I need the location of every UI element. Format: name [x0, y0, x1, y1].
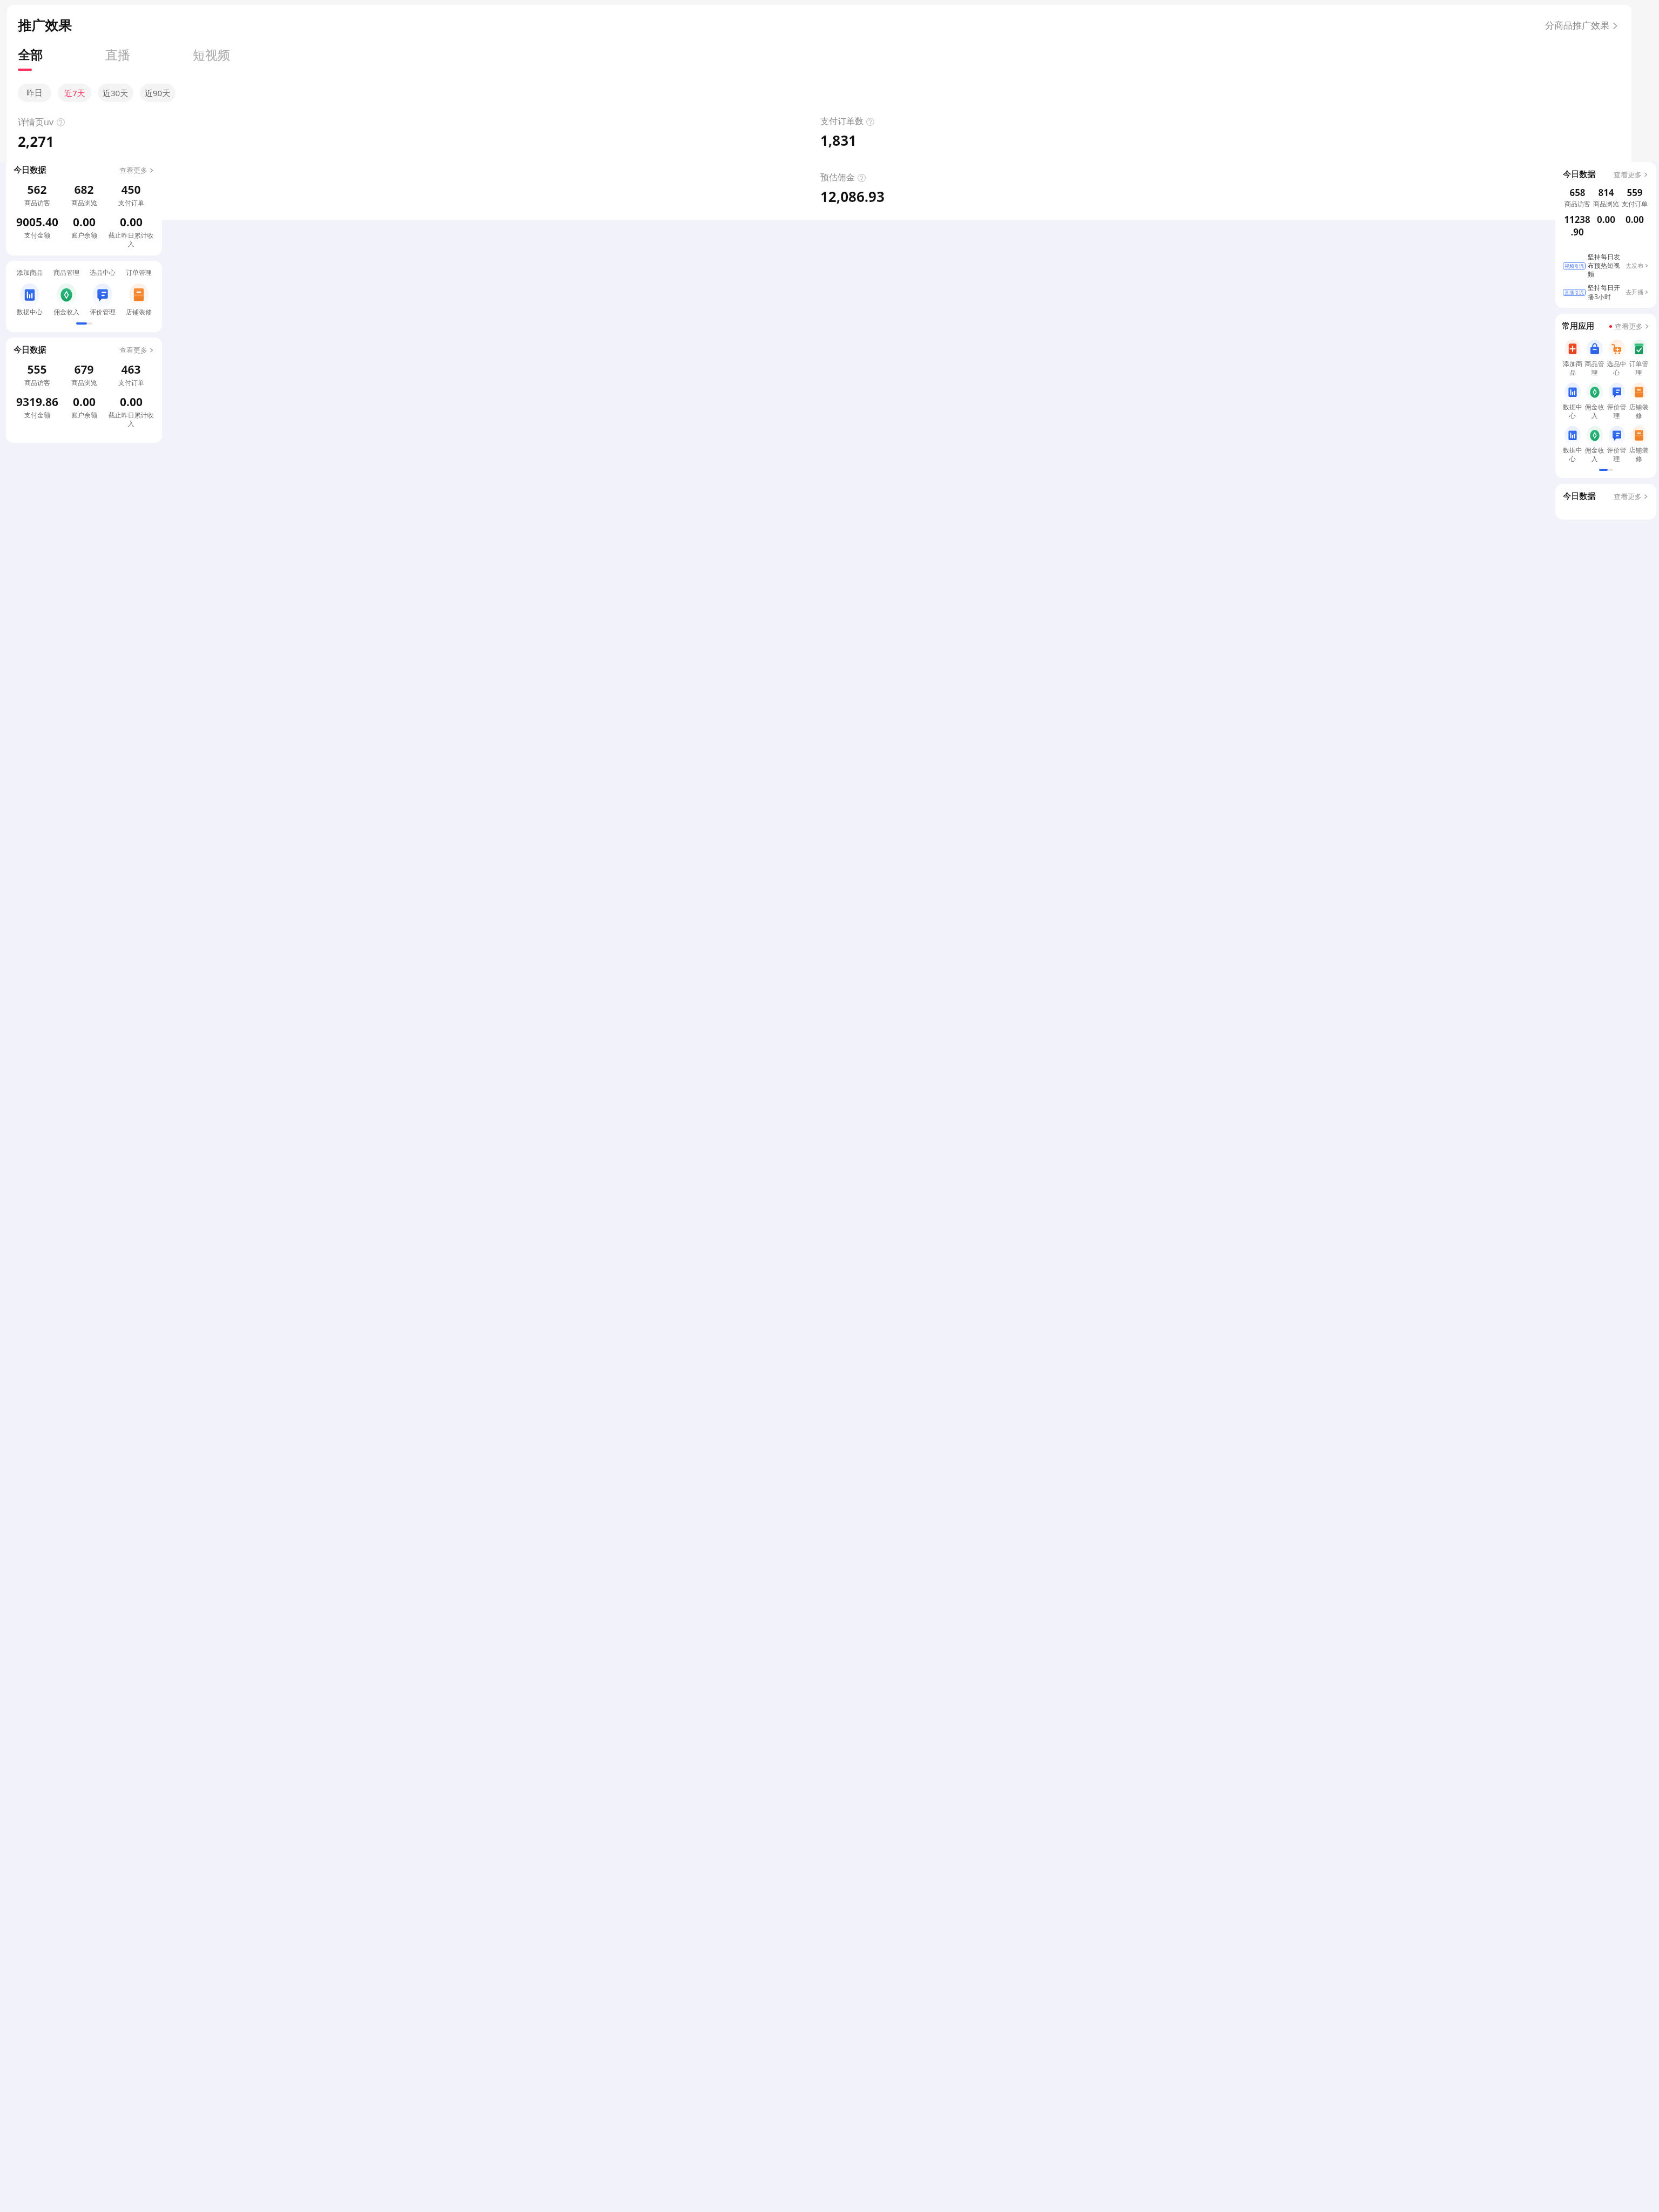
staticText: 视频引流	[1564, 263, 1584, 269]
button[interactable]: 查看更多	[115, 345, 154, 355]
staticText: 数据中心	[1562, 446, 1583, 463]
button[interactable]: 添加商品	[1562, 339, 1583, 377]
staticText: 短视频	[193, 48, 230, 63]
staticText: 添加商品	[17, 268, 43, 276]
staticText: 账户余额	[71, 411, 97, 419]
staticText: 常用应用	[1562, 321, 1594, 332]
staticText: 佣金收入	[1583, 403, 1606, 420]
button[interactable]: 查看更多	[115, 165, 154, 176]
button[interactable]: 查看更多	[1609, 491, 1649, 502]
staticText: 支付订单	[118, 379, 144, 387]
staticText: 658	[1569, 186, 1586, 199]
staticText: 支付订单	[1622, 200, 1648, 208]
staticText: 商品访客	[24, 199, 50, 207]
staticText: 今日数据	[1563, 170, 1595, 180]
staticText: 814	[1598, 186, 1614, 199]
button[interactable]: 短视频	[193, 48, 280, 71]
staticText: 商品浏览	[71, 199, 97, 207]
staticText: 查看更多	[119, 346, 147, 354]
staticText: 今日数据	[14, 165, 46, 176]
button[interactable]: 佣金收入	[1583, 382, 1606, 420]
button[interactable]: 数据中心	[1562, 426, 1583, 463]
staticText: 截止昨日累计收入	[107, 231, 154, 248]
staticText: 选品中心	[1606, 360, 1628, 377]
staticText: 近7天	[64, 87, 85, 98]
button[interactable]: 店铺装修	[1628, 426, 1650, 463]
button[interactable]: 近30天	[98, 84, 133, 102]
staticText: 直播	[105, 48, 130, 63]
staticText: 0.00	[1597, 213, 1615, 226]
staticText: 评价管理	[1606, 446, 1628, 463]
staticText: 坚持每日发布预热短视频	[1588, 253, 1626, 279]
staticText: 订单管理	[1628, 360, 1650, 377]
button[interactable]: 今日数据	[6, 338, 162, 443]
staticText: 全部	[18, 48, 43, 63]
button[interactable]: 佣金收入	[48, 283, 84, 316]
staticText: 商品浏览	[71, 379, 97, 387]
staticText: 查看更多	[1615, 322, 1643, 331]
staticText: 近90天	[145, 87, 171, 98]
staticText: 商品访客	[1564, 200, 1590, 208]
staticText: 评价管理	[90, 308, 116, 316]
staticText: 555	[27, 362, 47, 377]
button[interactable]: 佣金收入	[1583, 426, 1606, 463]
staticText: 12,086.93	[820, 187, 885, 206]
staticText: 评价管理	[1606, 403, 1628, 420]
button[interactable]: 店铺装修	[120, 283, 157, 316]
button[interactable]: 直播引流	[1563, 284, 1649, 301]
staticText: 添加商品	[1562, 360, 1583, 377]
staticText: 数据中心	[17, 308, 43, 316]
staticText: 去发布	[1626, 262, 1643, 269]
staticText: 查看更多	[119, 166, 147, 174]
staticText: 0.00	[120, 394, 143, 410]
staticText: 682	[74, 182, 94, 198]
button[interactable]: 选品中心	[1606, 339, 1628, 377]
button[interactable]: 查看更多	[1605, 321, 1650, 332]
button[interactable]: 评价管理	[1606, 426, 1628, 463]
button[interactable]: 全部	[18, 48, 105, 71]
button[interactable]: 分商品推广效果	[1542, 17, 1623, 35]
staticText: 推广效果	[18, 17, 72, 34]
button[interactable]: 数据中心	[1562, 382, 1583, 420]
staticText: 店铺装修	[126, 308, 152, 316]
button[interactable]: 昨日	[18, 84, 51, 102]
staticText: 支付总金额	[18, 172, 61, 183]
button[interactable]: 评价管理	[84, 283, 120, 316]
button[interactable]: 今日数据	[6, 158, 162, 255]
button[interactable]: 查看更多	[1609, 169, 1649, 180]
staticText: 账户余额	[71, 231, 97, 239]
staticText: 1,831	[820, 131, 857, 150]
staticText: 截止昨日累计收入	[107, 411, 154, 428]
staticText: 查看更多	[1614, 492, 1642, 501]
button[interactable]: 视频引流	[1563, 253, 1649, 279]
staticText: 679	[74, 362, 94, 377]
staticText: 昨日	[26, 88, 43, 98]
button[interactable]: 订单管理	[1628, 339, 1650, 377]
button[interactable]: 近7天	[58, 84, 91, 102]
staticText: 订单管理	[126, 268, 152, 276]
staticText: 商品访客	[24, 379, 50, 387]
staticText: 商品浏览	[1593, 200, 1619, 208]
staticText: 0.00	[73, 214, 96, 230]
button[interactable]: 近90天	[140, 84, 176, 102]
staticText: 支付订单	[118, 199, 144, 207]
staticText: 选品中心	[90, 268, 116, 276]
staticText: 9005.40	[16, 214, 58, 230]
button[interactable]: 数据中心	[11, 283, 48, 316]
staticText: 0.00	[1626, 213, 1644, 226]
staticText: 450	[121, 182, 141, 198]
button[interactable]: 店铺装修	[1628, 382, 1650, 420]
staticText: 数据中心	[1562, 403, 1583, 420]
button[interactable]: 今日数据	[1555, 162, 1656, 308]
staticText: 直播引流	[1564, 289, 1584, 295]
staticText: 562	[27, 182, 47, 198]
staticText: 463	[121, 362, 141, 377]
staticText: 今日数据	[14, 345, 46, 355]
button[interactable]: 今日数据	[1555, 484, 1656, 520]
staticText: 去开播	[1626, 288, 1643, 296]
button[interactable]: 商品管理	[1583, 339, 1606, 377]
button[interactable]: 直播	[105, 48, 193, 71]
button[interactable]: 评价管理	[1606, 382, 1628, 420]
staticText: 商品管理	[53, 268, 79, 276]
staticText: 559	[1627, 186, 1643, 199]
